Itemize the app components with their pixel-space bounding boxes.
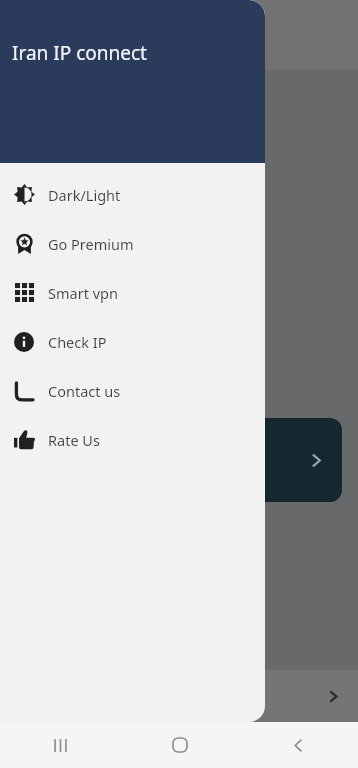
button[interactable]: Go Premium bbox=[0, 219, 265, 268]
button[interactable]: Iran IP connect bbox=[0, 0, 265, 163]
staticText: Dark/Light bbox=[48, 185, 121, 205]
other: Dark/Light bbox=[14, 184, 35, 205]
button[interactable]: Recent apps bbox=[0, 722, 120, 768]
button[interactable]: Home bbox=[120, 722, 239, 768]
button[interactable] bbox=[186, 418, 342, 502]
staticText: Rate Us bbox=[48, 430, 100, 450]
button[interactable]: Back bbox=[239, 722, 358, 768]
other: Go Premium bbox=[14, 233, 35, 254]
button[interactable]: Rate Us bbox=[0, 415, 265, 464]
staticText: Check IP bbox=[48, 332, 107, 352]
button[interactable]: Check IP bbox=[0, 317, 265, 366]
staticText: Contact us bbox=[48, 381, 121, 401]
other: Contact us bbox=[14, 381, 34, 401]
other: Smart vpn bbox=[15, 283, 34, 302]
staticText: Iran IP connect bbox=[12, 40, 147, 66]
other: Rate Us bbox=[14, 429, 35, 450]
button[interactable]: Dark/Light bbox=[0, 170, 265, 219]
staticText: Go Premium bbox=[48, 234, 134, 254]
button[interactable]: Smart vpn bbox=[0, 268, 265, 317]
button[interactable] bbox=[0, 670, 358, 722]
staticText: Smart vpn bbox=[48, 283, 118, 303]
other: Check IP bbox=[14, 332, 34, 352]
button[interactable]: Contact us bbox=[0, 366, 265, 415]
